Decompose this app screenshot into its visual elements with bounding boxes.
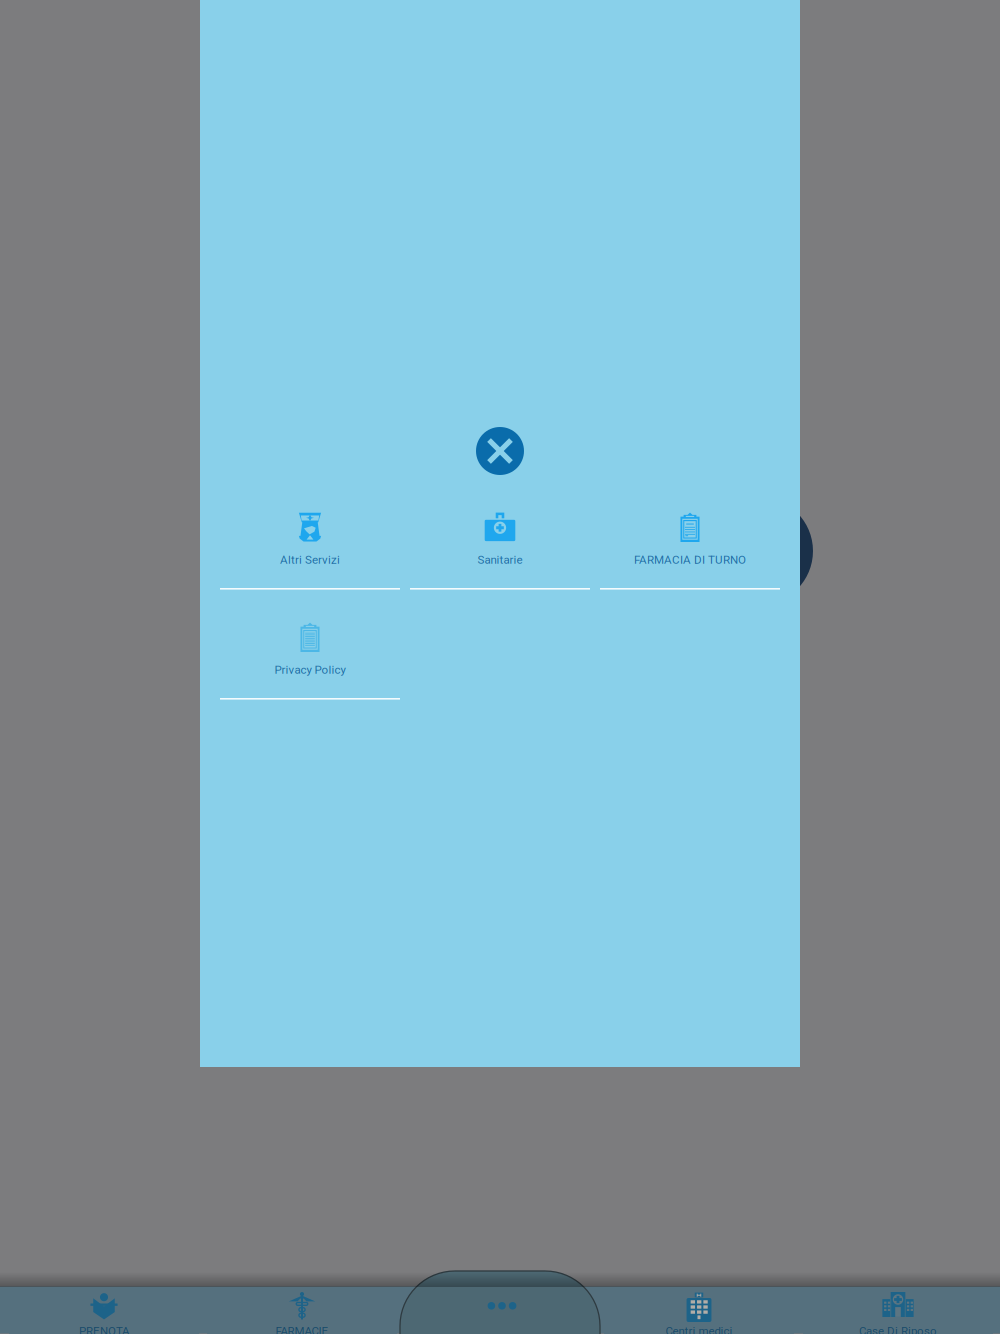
staticText: Privacy Policy bbox=[274, 663, 345, 677]
button[interactable]: Altri Servizi bbox=[215, 512, 405, 598]
staticText: PRENOTA bbox=[79, 1324, 129, 1334]
button[interactable]: Privacy Policy bbox=[215, 622, 405, 708]
staticText: Sanitarie bbox=[477, 553, 522, 567]
button[interactable]: PRENOTA bbox=[9, 1292, 199, 1334]
button[interactable]: Altro bbox=[400, 1271, 600, 1334]
button[interactable]: Sanitarie bbox=[405, 512, 595, 598]
button[interactable]: Centri medici bbox=[604, 1292, 794, 1334]
staticText: Altri Servizi bbox=[280, 553, 340, 567]
staticText: FARMACIE bbox=[275, 1324, 328, 1334]
button[interactable]: Case Di Riposo bbox=[803, 1292, 993, 1334]
staticText: Centri medici bbox=[665, 1324, 732, 1334]
button[interactable]: FARMACIE bbox=[207, 1292, 397, 1334]
button[interactable]: Chiudi bbox=[476, 427, 524, 475]
staticText: Case Di Riposo bbox=[859, 1324, 937, 1334]
button[interactable]: FARMACIA DI TURNO bbox=[595, 512, 785, 598]
staticText: FARMACIA DI TURNO bbox=[634, 553, 746, 567]
